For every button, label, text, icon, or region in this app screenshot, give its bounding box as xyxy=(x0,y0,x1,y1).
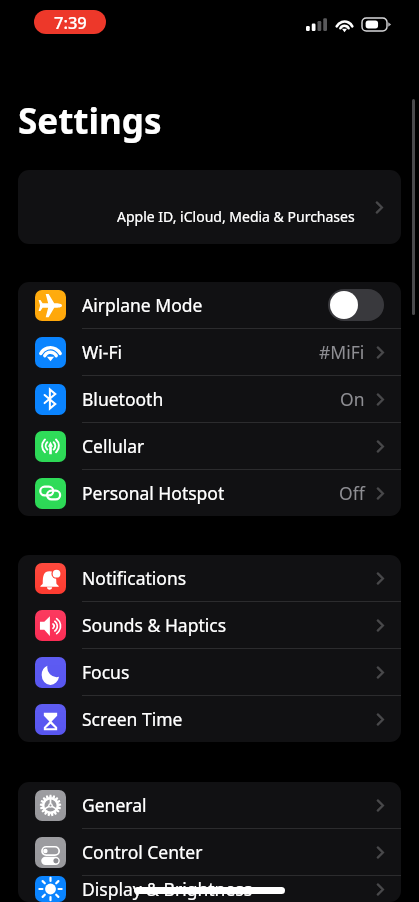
button[interactable]: Bluetooth xyxy=(18,376,401,423)
button[interactable]: Apple ID, iCloud, Media & Purchases xyxy=(18,170,401,244)
staticText: Bluetooth xyxy=(82,387,164,411)
staticText: Display & Brightness xyxy=(82,877,253,901)
button[interactable]: Wi-Fi xyxy=(18,329,401,376)
button[interactable]: Airplane Mode xyxy=(18,282,401,329)
staticText: General xyxy=(82,793,147,817)
staticText: On xyxy=(340,387,365,411)
staticText: Notifications xyxy=(82,566,187,590)
staticText: 7:39 xyxy=(54,11,87,33)
button[interactable]: Screen Time xyxy=(18,696,401,742)
staticText: Personal Hotspot xyxy=(82,481,225,505)
staticText: Apple ID, iCloud, Media & Purchases xyxy=(117,207,355,226)
staticText: Focus xyxy=(82,660,130,684)
button[interactable]: Personal Hotspot xyxy=(18,470,401,516)
staticText: Cellular xyxy=(82,434,145,458)
button[interactable]: General xyxy=(18,782,401,829)
staticText: Screen Time xyxy=(82,707,183,731)
button[interactable]: Sounds & Haptics xyxy=(18,602,401,649)
staticText: Off xyxy=(339,481,365,505)
button[interactable]: Notifications xyxy=(18,555,401,602)
staticText: #MiFi xyxy=(319,340,365,364)
staticText: Sounds & Haptics xyxy=(82,613,227,637)
button[interactable]: Cellular xyxy=(18,423,401,470)
staticText: Control Center xyxy=(82,840,203,864)
button[interactable]: Control Center xyxy=(18,829,401,876)
staticText: Settings xyxy=(18,97,162,145)
staticText: Airplane Mode xyxy=(82,293,203,317)
button[interactable]: Focus xyxy=(18,649,401,696)
staticText: Wi-Fi xyxy=(82,340,123,364)
button[interactable]: Display & Brightness xyxy=(18,876,401,902)
